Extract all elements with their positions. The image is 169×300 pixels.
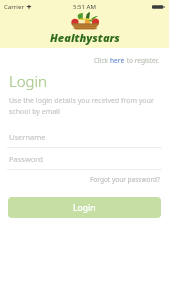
staticText: Login xyxy=(9,71,47,91)
staticText: Carrier xyxy=(4,3,24,11)
button[interactable]: Forgot your password? xyxy=(88,173,162,186)
staticText: Click xyxy=(94,56,110,65)
staticText: to register. xyxy=(125,56,160,65)
staticText: Use the login details you received from … xyxy=(9,96,155,116)
other: Wi-Fi signal xyxy=(26,4,32,10)
button[interactable]: Login xyxy=(8,197,161,218)
staticText: Username xyxy=(9,132,46,142)
button[interactable]: Username xyxy=(0,126,169,147)
staticText: Login xyxy=(73,202,96,214)
other: Healthystars logo xyxy=(60,12,110,30)
other: Battery full xyxy=(152,4,165,10)
button[interactable]: Password xyxy=(0,148,169,169)
staticText: here xyxy=(110,56,125,65)
staticText: 5:51 AM xyxy=(73,3,96,11)
staticText: Healthystars xyxy=(50,30,120,45)
button[interactable]: Click xyxy=(92,54,162,67)
staticText: Password xyxy=(9,154,43,164)
